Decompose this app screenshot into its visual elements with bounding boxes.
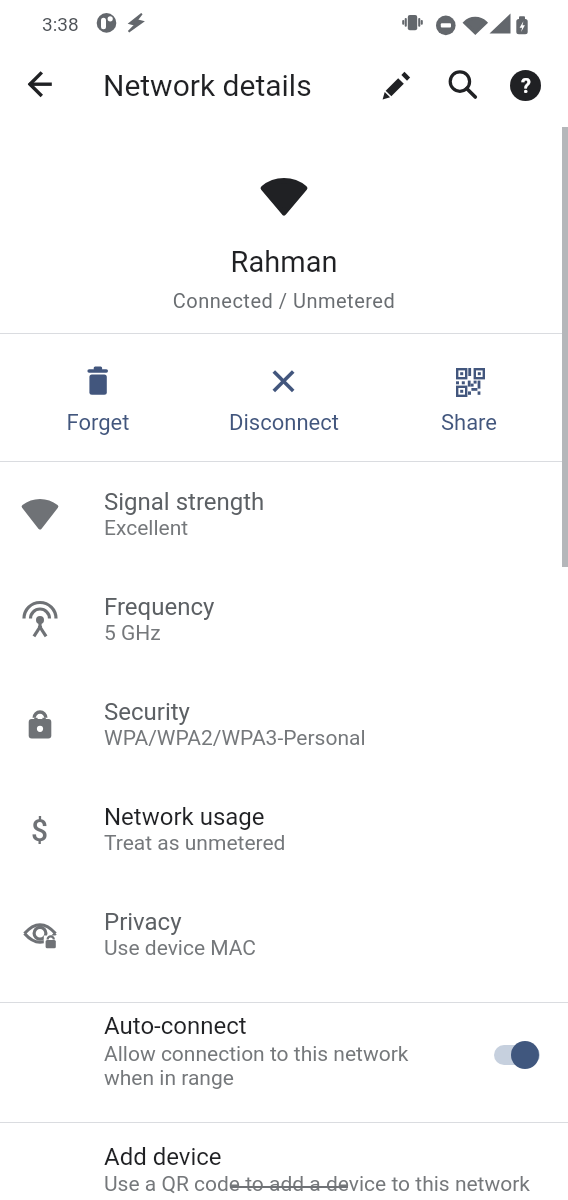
staticText: Network usage — [104, 803, 265, 831]
staticText: Use a QR code to add a device to this ne… — [104, 1172, 531, 1197]
staticText: WPA/WPA2/WPA3-Personal — [104, 726, 366, 751]
staticText: Allow connection to this network — [104, 1042, 409, 1067]
button[interactable] — [438, 61, 486, 109]
staticText: Privacy — [104, 908, 182, 936]
staticText: ? — [521, 74, 531, 97]
button[interactable]: Frequency — [0, 567, 568, 672]
staticText: Auto-connect — [104, 1012, 247, 1040]
staticText: when in range — [104, 1066, 234, 1091]
staticText: 5 GHz — [104, 621, 161, 646]
staticText: Connected / Unmetered — [0, 289, 568, 312]
button[interactable]: Security — [0, 672, 568, 777]
staticText: Treat as unmetered — [104, 831, 286, 856]
staticText: Use device MAC — [104, 936, 257, 961]
staticText: Excellent — [104, 516, 189, 541]
button[interactable]: Share — [399, 336, 539, 456]
button[interactable]: $ — [0, 777, 568, 882]
button[interactable]: Disconnect — [214, 336, 354, 456]
staticText: Security — [104, 698, 190, 726]
button[interactable]: Privacy — [0, 882, 568, 987]
staticText: Network details — [103, 68, 312, 103]
staticText: Add device — [104, 1143, 222, 1171]
button[interactable] — [372, 61, 420, 109]
button[interactable]: Forget — [28, 336, 168, 456]
staticText: $ — [31, 813, 49, 848]
staticText: Forget — [28, 410, 168, 436]
staticText: Frequency — [104, 593, 215, 621]
staticText: 3:38 — [42, 13, 79, 35]
staticText: Share — [399, 410, 539, 436]
staticText: Rahman — [0, 245, 568, 279]
button[interactable]: Auto-connect — [0, 1003, 568, 1122]
button[interactable]: ? — [501, 61, 549, 109]
staticText: Signal strength — [104, 488, 265, 516]
button[interactable]: Signal strength — [0, 462, 568, 567]
button[interactable] — [17, 61, 65, 109]
staticText: Disconnect — [214, 410, 354, 436]
button[interactable]: Add device — [0, 1123, 568, 1200]
